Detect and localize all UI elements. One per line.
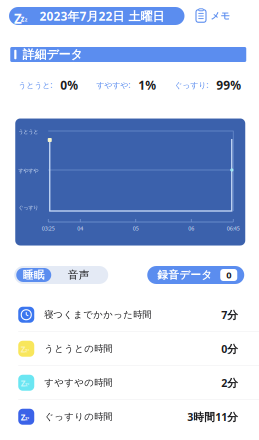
staticText: ぐっすり [18,204,38,211]
staticText: メモ [210,10,230,22]
staticText: ぐっすりの時間 [44,411,112,422]
staticText: 詳細データ [22,47,82,62]
staticText: 2分 [221,376,238,390]
staticText: すやすやの時間 [44,377,112,388]
staticText: 音声 [68,268,90,281]
staticText: 0% [60,77,78,93]
staticText: 0分 [221,342,238,356]
staticText: ぐっすり: [174,80,208,90]
button[interactable]: Z [0,332,259,365]
staticText: うとうと: [18,80,52,90]
staticText: 06:45 [227,225,240,232]
staticText: 03:25 [42,225,55,232]
staticText: z [21,13,25,24]
staticText: 99% [216,77,241,93]
staticText: Z [14,10,22,27]
button[interactable]: Z [0,366,259,399]
staticText: 録音データ [157,268,212,281]
staticText: 2023年7月22日 土曜日 [39,8,164,24]
staticText: z [28,382,29,386]
staticText: 06 [188,225,194,232]
button[interactable]: 録音データ [147,266,244,284]
button[interactable]: Z [9,7,184,25]
staticText: うとうと [18,128,38,135]
button[interactable]: メモ [192,7,232,25]
staticText: 睡眠 [23,268,45,281]
button[interactable]: 音声 [51,268,106,282]
staticText: 0 [226,269,231,281]
staticText: Z [21,344,26,355]
staticText: すやすや [18,167,38,174]
staticText: 寝つくまでかかった時間 [44,309,151,320]
staticText: z [25,16,28,23]
staticText: z [25,414,28,422]
staticText: z [25,380,28,388]
staticText: すやすや: [96,80,130,90]
button[interactable]: 睡眠 [16,268,51,282]
button[interactable]: Z [0,400,259,433]
staticText: Z [21,378,26,389]
staticText: z [28,416,29,420]
button[interactable]: 寝つくまでかかった時間 [0,298,259,331]
staticText: 1% [138,77,156,93]
staticText: z [25,346,28,354]
staticText: 04 [77,225,83,232]
staticText: うとうとの時間 [44,343,112,354]
staticText: Z [21,412,26,423]
staticText: z [28,348,29,352]
staticText: 7分 [221,308,238,322]
staticText: 3時間11分 [187,410,238,424]
staticText: 05 [133,225,139,232]
